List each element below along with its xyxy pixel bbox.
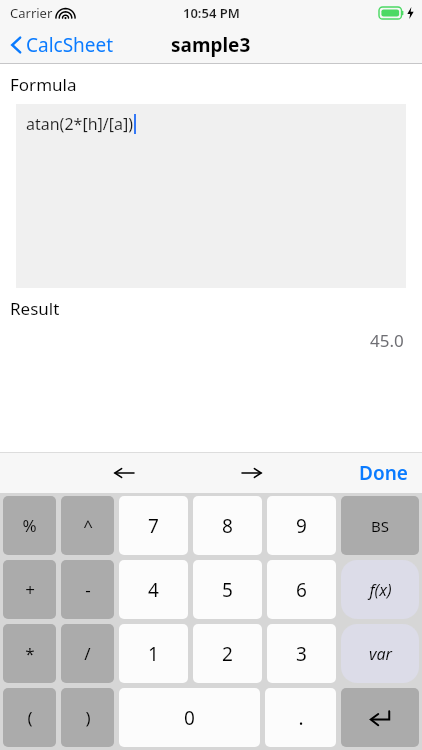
staticText: 5 bbox=[222, 577, 233, 603]
staticText: 6 bbox=[296, 577, 307, 603]
staticText: / bbox=[84, 642, 91, 665]
button[interactable]: ) bbox=[61, 688, 114, 747]
button[interactable]: ( bbox=[3, 688, 56, 747]
staticText: 9 bbox=[296, 513, 307, 539]
staticText: 1 bbox=[148, 641, 159, 667]
button[interactable]: BS bbox=[341, 496, 419, 555]
staticText: atan(2*[h]/[a]) bbox=[26, 113, 134, 135]
button[interactable]: . bbox=[265, 688, 336, 747]
staticText: 0 bbox=[184, 705, 195, 731]
button[interactable]: var bbox=[341, 624, 419, 683]
button[interactable]: 3 bbox=[267, 624, 336, 683]
staticText: 2 bbox=[222, 641, 233, 667]
staticText: - bbox=[85, 578, 91, 601]
staticText: 7 bbox=[148, 513, 159, 539]
button[interactable]: Done bbox=[345, 454, 422, 492]
button[interactable]: ^ bbox=[61, 496, 114, 555]
staticText: . bbox=[298, 705, 304, 731]
staticText: + bbox=[25, 578, 35, 601]
button[interactable]: - bbox=[61, 560, 114, 619]
staticText: Result bbox=[10, 297, 60, 320]
staticText: Done bbox=[359, 460, 408, 486]
staticText: Formula bbox=[10, 73, 77, 96]
staticText: 10:54 PM bbox=[183, 4, 240, 22]
staticText: ^ bbox=[83, 514, 93, 537]
staticText: CalcSheet bbox=[26, 32, 114, 58]
staticText: Carrier bbox=[10, 4, 53, 22]
button[interactable]: atan(2*[h]/[a]) bbox=[16, 104, 406, 288]
staticText: % bbox=[22, 514, 37, 537]
button[interactable]: 4 bbox=[119, 560, 188, 619]
button[interactable]: 2 bbox=[193, 624, 262, 683]
staticText: 4 bbox=[148, 577, 159, 603]
staticText: 45.0 bbox=[370, 329, 404, 352]
staticText: f(x) bbox=[369, 579, 392, 601]
staticText: ) bbox=[85, 706, 91, 729]
staticText: * bbox=[25, 642, 35, 665]
button[interactable]: 8 bbox=[193, 496, 262, 555]
button[interactable]: 7 bbox=[119, 496, 188, 555]
button[interactable]: 1 bbox=[119, 624, 188, 683]
staticText: 3 bbox=[296, 641, 307, 667]
staticText: 8 bbox=[222, 513, 233, 539]
button[interactable]: 6 bbox=[267, 560, 336, 619]
button[interactable]: 5 bbox=[193, 560, 262, 619]
button[interactable]: f(x) bbox=[341, 560, 419, 619]
button[interactable]: * bbox=[3, 624, 56, 683]
button[interactable]: 9 bbox=[267, 496, 336, 555]
button[interactable]: + bbox=[3, 560, 56, 619]
staticText: ( bbox=[27, 706, 33, 729]
button[interactable]: Enter bbox=[341, 688, 419, 747]
button[interactable]: CalcSheet bbox=[0, 28, 126, 62]
button[interactable]: Move cursor left bbox=[104, 456, 144, 490]
staticText: sample3 bbox=[171, 32, 251, 58]
button[interactable]: 0 bbox=[119, 688, 260, 747]
button[interactable]: % bbox=[3, 496, 56, 555]
button[interactable]: / bbox=[61, 624, 114, 683]
staticText: BS bbox=[371, 516, 389, 536]
staticText: var bbox=[369, 643, 392, 665]
button[interactable]: Move cursor right bbox=[232, 456, 272, 490]
